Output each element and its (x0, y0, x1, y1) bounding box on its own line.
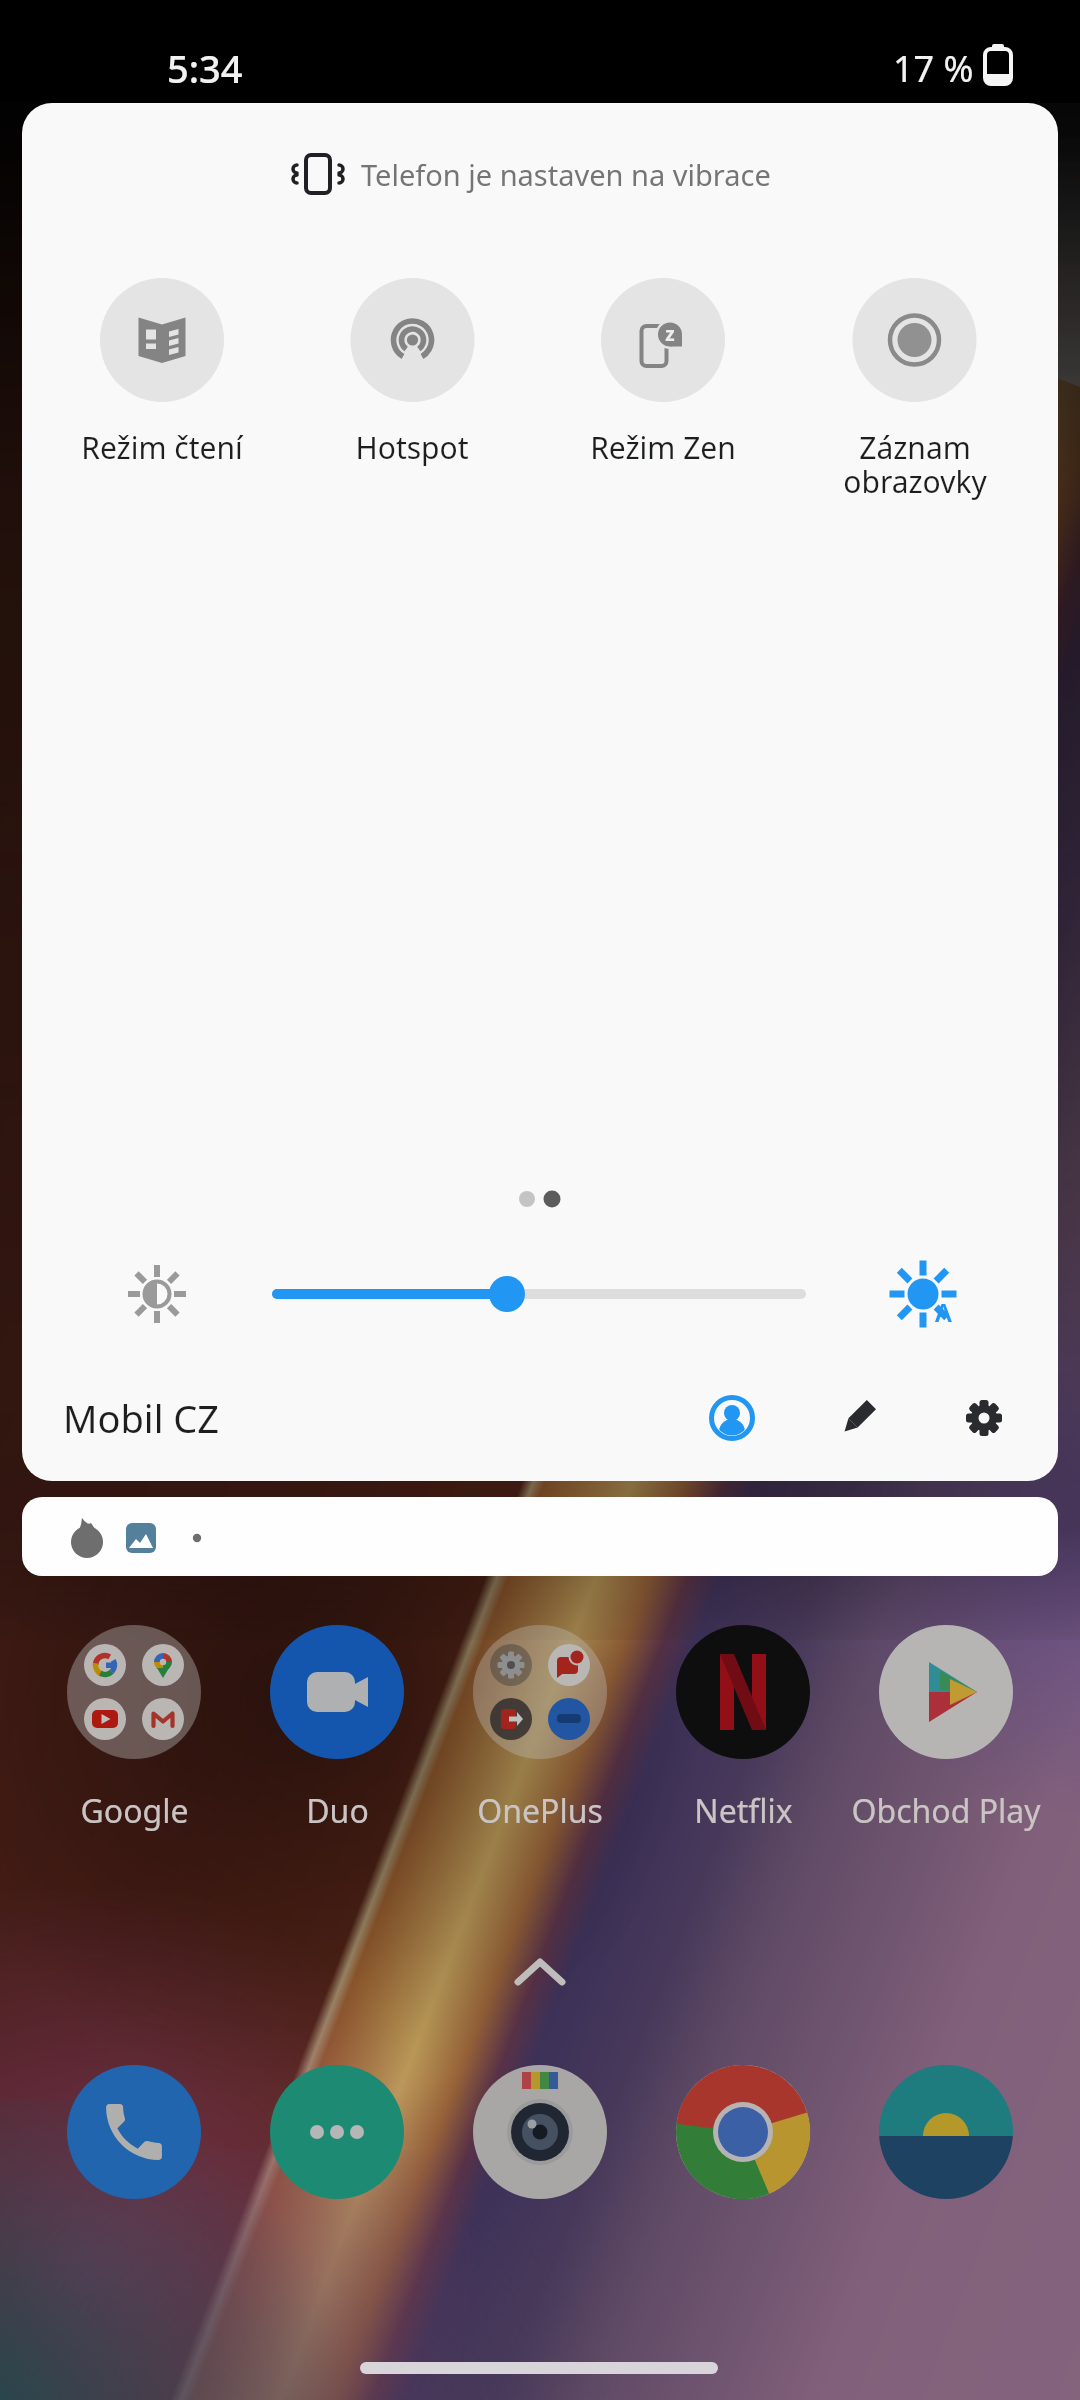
button[interactable] (676, 1625, 810, 1759)
staticText: Telefon je nastaven na vibrace (361, 155, 771, 194)
staticText: 17 % (893, 44, 974, 93)
staticText: Režim Zen (590, 427, 736, 468)
button[interactable] (676, 2065, 810, 2199)
staticText: Obchod Play (851, 1789, 1041, 1833)
staticText: Záznam (859, 427, 971, 468)
staticText: z (665, 321, 675, 347)
button[interactable] (879, 2065, 1013, 2199)
staticText: obrazovky (843, 461, 987, 502)
staticText: Hotspot (355, 427, 469, 468)
button[interactable] (22, 1497, 1058, 1576)
button[interactable] (100, 278, 224, 402)
staticText: Google (80, 1789, 189, 1833)
staticText: Duo (306, 1789, 369, 1833)
button[interactable] (350, 278, 474, 402)
button[interactable] (702, 1388, 762, 1448)
button[interactable] (270, 1625, 404, 1759)
staticText: Režim čtení (81, 427, 243, 468)
button[interactable] (250, 1260, 810, 1328)
staticText: A (935, 1295, 952, 1329)
button[interactable] (270, 2065, 404, 2199)
staticText: 5:34 (167, 42, 243, 94)
button[interactable] (67, 1625, 201, 1759)
staticText: OnePlus (477, 1789, 603, 1833)
button[interactable] (473, 1625, 607, 1759)
staticText: Mobil CZ (63, 1392, 220, 1444)
button[interactable] (67, 2065, 201, 2199)
button[interactable] (473, 2065, 607, 2199)
staticText: Netflix (694, 1789, 793, 1833)
button[interactable] (954, 1388, 1014, 1448)
button[interactable] (879, 1625, 1013, 1759)
button[interactable] (601, 278, 725, 402)
button[interactable] (852, 278, 976, 402)
button[interactable] (828, 1388, 888, 1448)
